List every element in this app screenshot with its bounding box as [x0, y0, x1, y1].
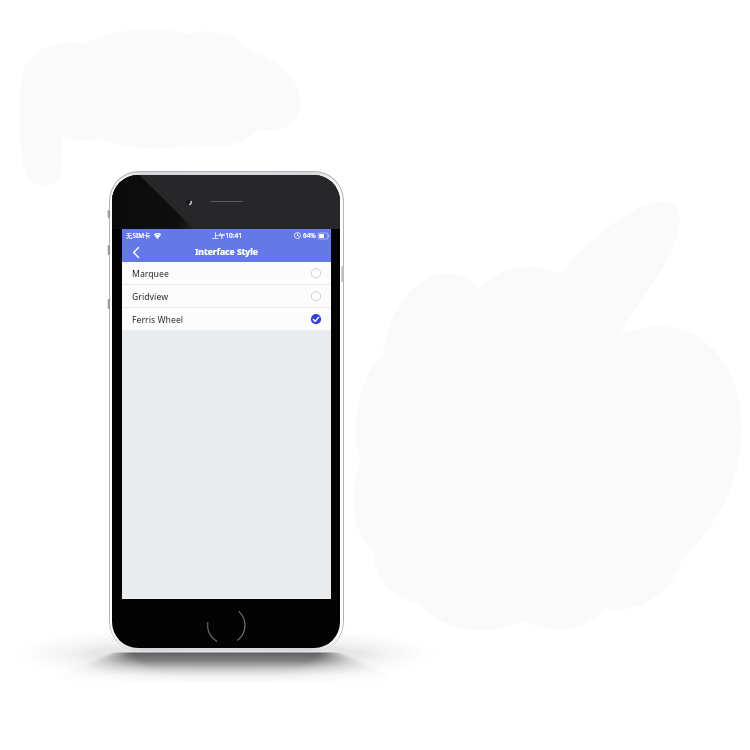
- staticText: Ferris Wheel: [132, 314, 184, 326]
- staticText: 上午10:41: [212, 231, 243, 240]
- staticText: Interface Style: [195, 246, 258, 258]
- button[interactable]: Gridview: [122, 285, 331, 307]
- button[interactable]: Back: [125, 242, 147, 262]
- staticText: Marquee: [132, 268, 169, 280]
- button[interactable]: Marquee: [122, 262, 331, 284]
- staticText: 64%: [303, 231, 316, 240]
- staticText: 无SIM卡: [126, 231, 151, 240]
- staticText: Gridview: [132, 291, 169, 303]
- button[interactable]: Ferris Wheel: [122, 308, 331, 330]
